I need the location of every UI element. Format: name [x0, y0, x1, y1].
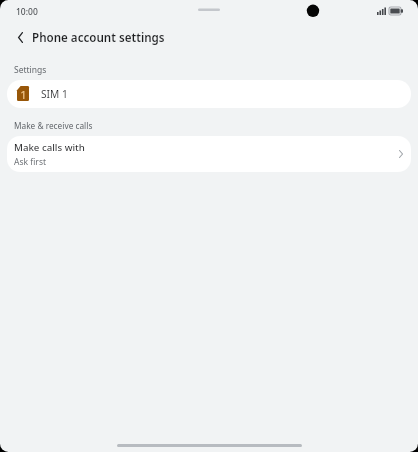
staticText: Ask first: [14, 156, 47, 168]
button[interactable]: Back: [7, 24, 33, 50]
staticText: Phone account settings: [32, 30, 165, 46]
staticText: Make calls with: [14, 141, 85, 154]
staticText: Make & receive calls: [14, 120, 93, 131]
staticText: SIM 1: [41, 87, 68, 101]
button[interactable]: Make calls with: [7, 136, 411, 172]
staticText: 1: [20, 87, 27, 102]
button[interactable]: 1: [7, 80, 411, 108]
staticText: Settings: [14, 64, 47, 76]
staticText: 10:00: [16, 6, 38, 18]
